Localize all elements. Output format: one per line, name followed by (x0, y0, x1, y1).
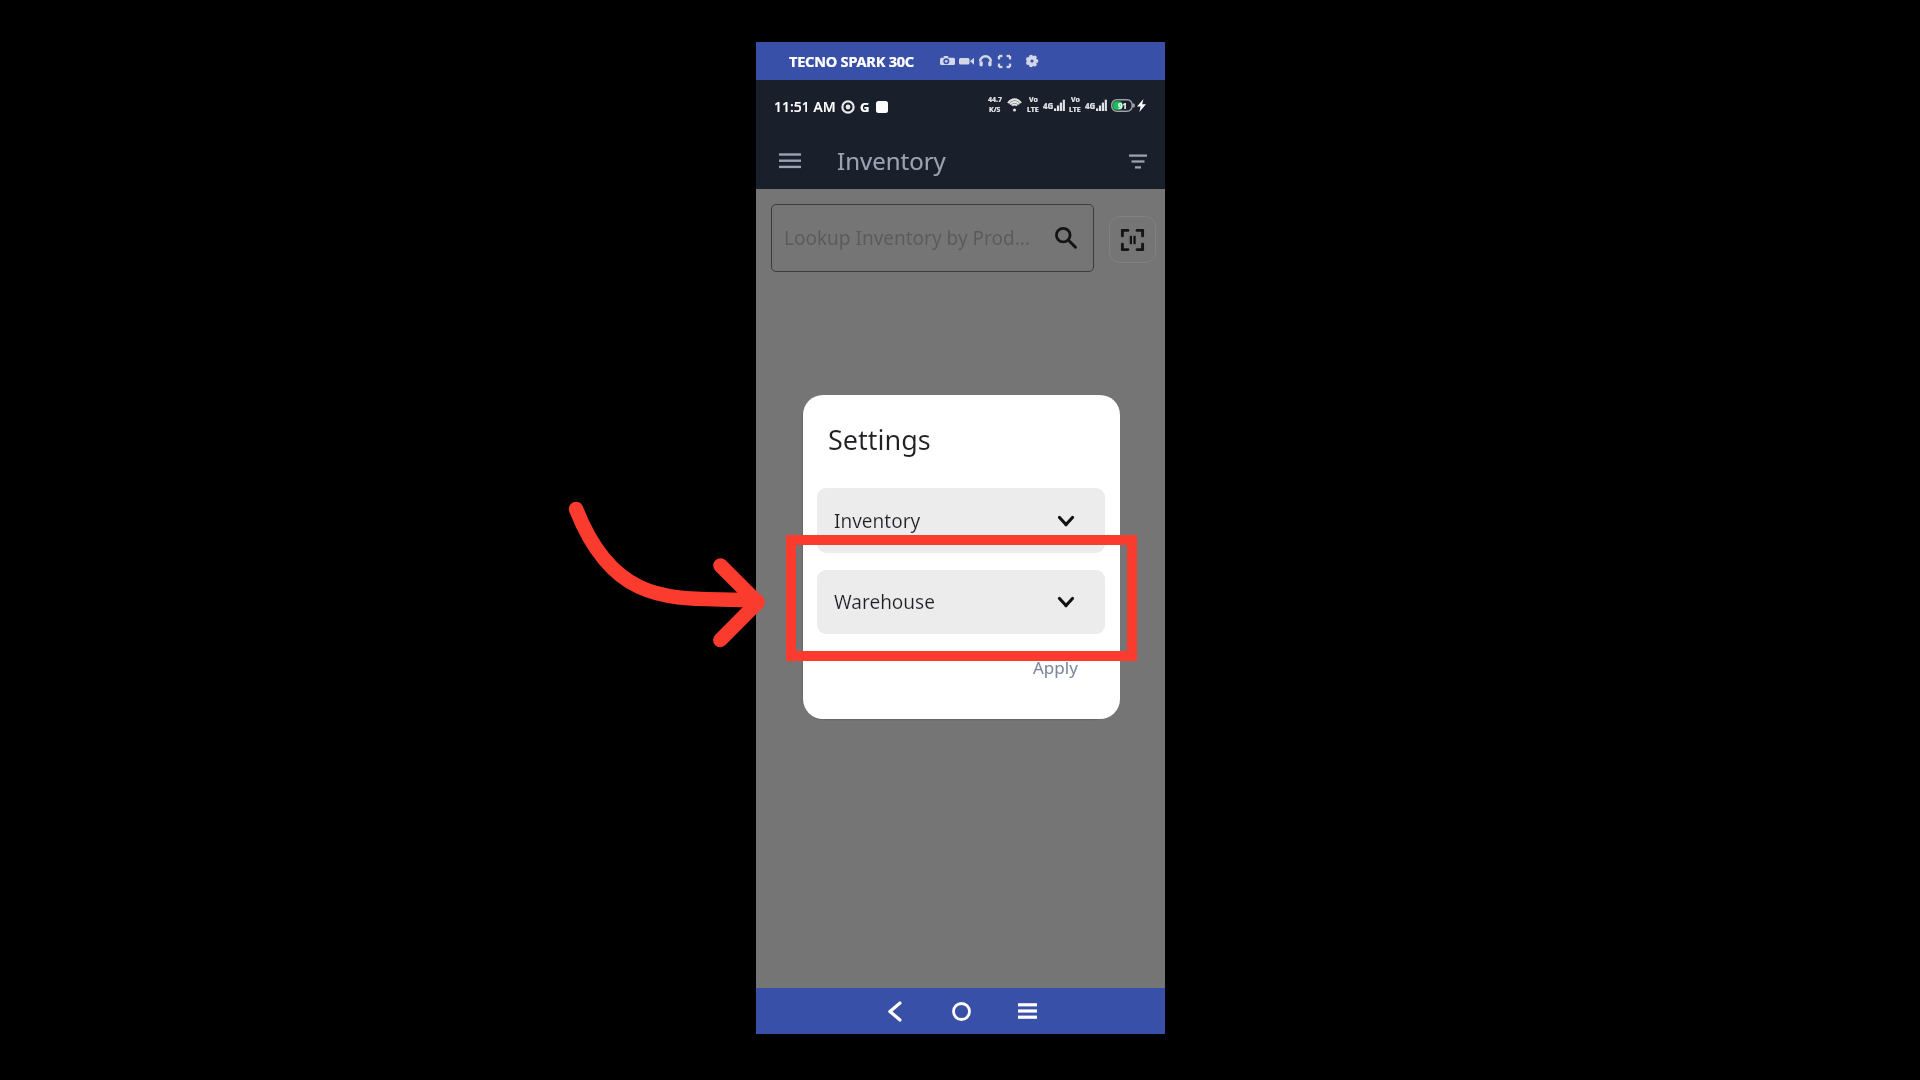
staticText: 11:51 AM (774, 97, 836, 116)
staticText: Apply (1033, 656, 1078, 679)
button[interactable]: Scan barcode (1109, 216, 1156, 263)
button[interactable]: Settings (1025, 50, 1039, 72)
button[interactable]: Back (872, 988, 918, 1034)
staticText: 4G (1085, 100, 1096, 111)
button[interactable]: Filter (1117, 140, 1159, 182)
button[interactable]: Apply (1027, 653, 1084, 682)
staticText: 4G (1043, 100, 1054, 111)
button[interactable]: Recent apps (1004, 988, 1050, 1034)
button[interactable]: Lookup Inventory by Prod... (771, 204, 1094, 272)
button[interactable]: Headphones (978, 50, 993, 72)
button[interactable]: Full screen (997, 50, 1012, 72)
staticText: Inventory (837, 144, 946, 177)
button[interactable]: Menu (769, 140, 811, 182)
button[interactable]: Home (938, 988, 984, 1034)
staticText: TECNO SPARK 30C (789, 51, 914, 71)
staticText: Lookup Inventory by Prod... (784, 225, 1055, 251)
button[interactable]: Record video (958, 50, 975, 72)
button[interactable]: Inventory (817, 488, 1105, 553)
staticText: LTE (1069, 105, 1081, 115)
staticText: Warehouse (834, 589, 1058, 615)
staticText: 91 (1118, 100, 1128, 111)
staticText: Inventory (834, 508, 1058, 534)
staticText: 44.7 (988, 95, 1002, 105)
staticText: Settings (828, 421, 931, 458)
staticText: G (860, 98, 870, 116)
button[interactable]: Warehouse (817, 570, 1105, 634)
staticText: Vo (1071, 95, 1080, 105)
staticText: Vo (1029, 95, 1038, 105)
staticText: K/S (989, 105, 1001, 115)
button[interactable]: Camera (939, 50, 956, 72)
staticText: LTE (1027, 105, 1039, 115)
